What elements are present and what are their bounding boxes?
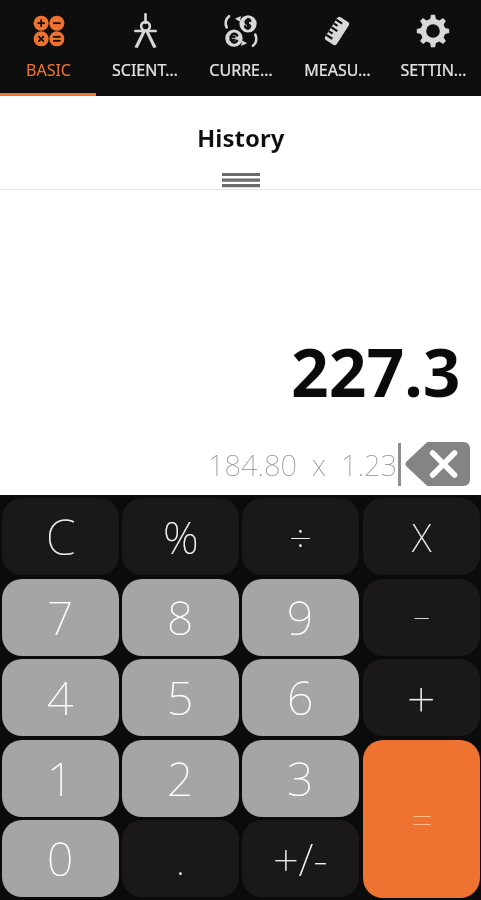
staticText: 0 <box>47 827 74 890</box>
button[interactable]: − <box>363 579 480 656</box>
button[interactable]: History drag handle <box>222 173 260 187</box>
staticText: 2 <box>167 747 194 810</box>
button[interactable]: 1 <box>2 740 119 817</box>
staticText: + <box>407 664 436 732</box>
staticText: 7 <box>47 586 74 649</box>
button[interactable]: SCIENT… <box>97 0 193 96</box>
button[interactable]: MEASU… <box>289 0 385 96</box>
staticText: BASIC <box>26 59 71 81</box>
button[interactable]: 5 <box>122 659 239 736</box>
button[interactable]: +/- <box>242 820 359 897</box>
button[interactable]: X <box>363 498 480 575</box>
staticText: CURRE… <box>209 59 273 81</box>
button[interactable]: Backspace <box>404 442 470 486</box>
button[interactable]: 6 <box>242 659 359 736</box>
button[interactable]: = <box>363 740 480 898</box>
button[interactable]: 7 <box>2 579 119 656</box>
staticText: 184.80 x 1.23 <box>208 445 398 484</box>
staticText: 4 <box>47 666 74 729</box>
button[interactable]: + <box>363 659 480 736</box>
button[interactable]: 0 <box>2 820 119 897</box>
staticText: % <box>163 506 199 567</box>
staticText: ÷ <box>289 510 312 564</box>
staticText: 5 <box>167 666 194 729</box>
staticText: 1 <box>47 747 74 810</box>
staticText: +/- <box>273 828 328 889</box>
button[interactable]: ÷ <box>242 498 359 575</box>
button[interactable]: . <box>122 820 239 897</box>
staticText: SCIENT… <box>112 59 178 81</box>
button[interactable]: 9 <box>242 579 359 656</box>
staticText: 227.3 <box>291 326 461 416</box>
button[interactable]: % <box>122 498 239 575</box>
staticText: 3 <box>287 747 314 810</box>
staticText: − <box>413 597 431 638</box>
staticText: History <box>197 121 285 154</box>
staticText: = <box>411 793 433 845</box>
button[interactable]: 8 <box>122 579 239 656</box>
button[interactable]: 4 <box>2 659 119 736</box>
button[interactable]: BASIC <box>0 0 97 96</box>
staticText: . <box>176 832 185 886</box>
staticText: SETTIN… <box>400 59 467 81</box>
button[interactable]: C <box>2 498 119 575</box>
button[interactable]: CURRE… <box>193 0 289 96</box>
staticText: C <box>46 504 76 569</box>
staticText: MEASU… <box>304 59 371 81</box>
button[interactable]: 3 <box>242 740 359 817</box>
button[interactable]: 2 <box>122 740 239 817</box>
staticText: 9 <box>287 586 314 649</box>
staticText: 6 <box>287 666 314 729</box>
button[interactable]: SETTIN… <box>385 0 481 96</box>
staticText: X <box>412 511 432 563</box>
staticText: 8 <box>167 586 194 649</box>
